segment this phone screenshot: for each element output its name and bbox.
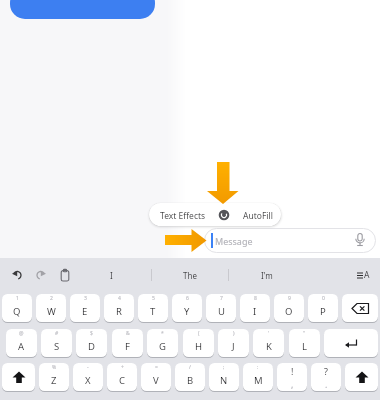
button[interactable]: 8 (240, 294, 270, 322)
button[interactable] (2, 363, 35, 391)
staticText: / (189, 364, 191, 371)
staticText: H (195, 340, 203, 353)
button[interactable]: 4 (104, 294, 134, 322)
staticText: R (116, 305, 122, 318)
button[interactable]: 6 (172, 294, 202, 322)
staticText: . (325, 378, 328, 390)
staticText: , (291, 378, 294, 390)
staticText: - (87, 364, 89, 371)
staticText: A (364, 269, 370, 281)
staticText: V (153, 374, 159, 387)
button[interactable]: 5 (138, 294, 168, 322)
button[interactable]: Text Effects (149, 203, 281, 226)
staticText: ; (223, 364, 225, 371)
button[interactable]: # (41, 329, 72, 357)
staticText: @ (19, 330, 24, 337)
staticText: 2 (50, 295, 53, 302)
staticText: G (159, 340, 166, 353)
staticText: ? (324, 365, 328, 377)
staticText: Message (215, 235, 253, 247)
button[interactable]: ' (253, 329, 284, 357)
staticText: Text Effects (160, 210, 206, 222)
staticText: 3 (84, 295, 87, 302)
staticText: J (232, 340, 235, 353)
staticText: D (88, 340, 95, 353)
staticText: ) (233, 330, 235, 337)
staticText: N (220, 374, 228, 387)
staticText: 8 (254, 295, 257, 302)
staticText: ' (268, 330, 270, 337)
button[interactable]: 2 (36, 294, 66, 322)
staticText: E (82, 305, 88, 318)
button[interactable] (345, 363, 378, 391)
staticText: P (320, 305, 326, 318)
button[interactable]: ) (218, 329, 249, 357)
staticText: " (303, 330, 306, 337)
staticText: AutoFill (243, 210, 273, 222)
staticText: * (161, 330, 164, 337)
button[interactable]: / (175, 363, 205, 391)
button[interactable]: + (107, 363, 137, 391)
staticText: 5 (152, 295, 155, 302)
button[interactable]: $ (76, 329, 107, 357)
staticText: W (47, 305, 56, 318)
button[interactable]: = (141, 363, 171, 391)
staticText: % (52, 364, 57, 371)
button[interactable]: & (112, 329, 143, 357)
staticText: ! (291, 365, 294, 377)
staticText: B (187, 374, 194, 387)
staticText: X (85, 374, 91, 387)
button[interactable]: * (147, 329, 178, 357)
button[interactable]: 9 (274, 294, 304, 322)
button[interactable]: 1 (2, 294, 32, 322)
staticText: 7 (220, 295, 223, 302)
staticText: Q (13, 305, 21, 318)
staticText: C (119, 374, 126, 387)
staticText: A (18, 340, 25, 353)
staticText: + (121, 364, 124, 371)
staticText: & (126, 330, 130, 337)
staticText: = (155, 364, 158, 371)
staticText: L (302, 340, 307, 353)
staticText: I'm (261, 270, 273, 281)
staticText: 1 (16, 295, 19, 302)
staticText: Y (184, 305, 190, 318)
staticText: 0 (322, 295, 325, 302)
staticText: ( (198, 330, 200, 337)
button[interactable]: % (39, 363, 69, 391)
button[interactable]: ? (311, 363, 341, 391)
staticText: # (55, 330, 59, 337)
button[interactable]: - (73, 363, 103, 391)
staticText: The (183, 270, 197, 281)
staticText: 6 (186, 295, 189, 302)
button[interactable]: " (289, 329, 320, 357)
button[interactable]: 0 (308, 294, 338, 322)
staticText: O (285, 305, 293, 318)
button[interactable]: ; (209, 363, 239, 391)
staticText: 4 (118, 295, 121, 302)
staticText: F (125, 340, 130, 353)
staticText: K (266, 340, 272, 353)
staticText: I (253, 305, 257, 318)
button[interactable]: 3 (70, 294, 100, 322)
button[interactable]: @ (6, 329, 37, 357)
button[interactable]: ! (277, 363, 307, 391)
button[interactable] (342, 294, 378, 322)
button[interactable]: 7 (206, 294, 236, 322)
staticText: U (218, 305, 225, 318)
staticText: Z (51, 374, 57, 387)
staticText: : (257, 364, 259, 371)
button[interactable] (324, 329, 378, 357)
staticText: I (110, 270, 113, 281)
staticText: 9 (288, 295, 291, 302)
staticText: T (150, 305, 156, 318)
staticText: $ (90, 330, 93, 337)
button[interactable]: ( (183, 329, 214, 357)
button[interactable]: : (243, 363, 273, 391)
button[interactable]: Message (204, 228, 376, 253)
staticText: S (54, 340, 60, 353)
staticText: M (254, 374, 263, 387)
